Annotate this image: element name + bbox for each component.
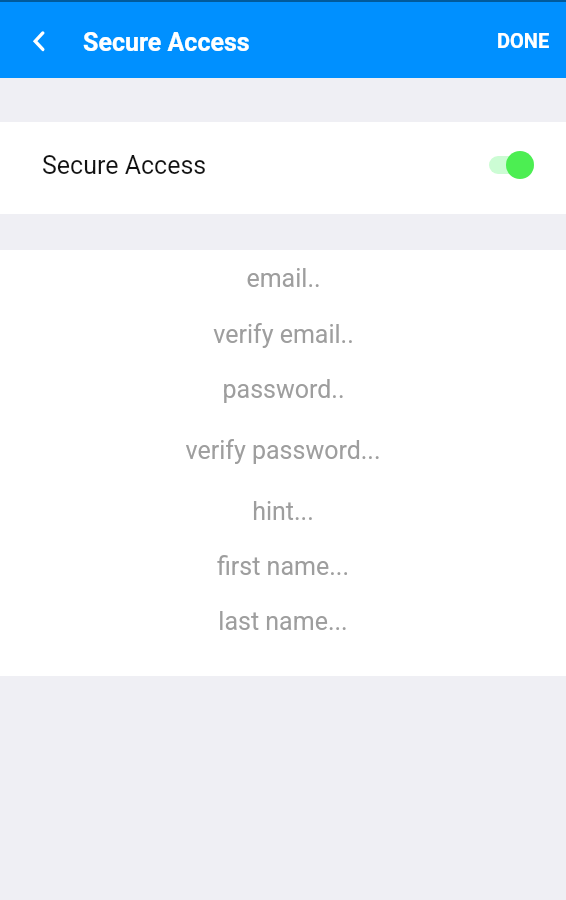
button[interactable]: DONE [479, 15, 566, 66]
staticText: email.. [246, 264, 321, 293]
button[interactable]: last name... [0, 579, 566, 635]
staticText: password.. [222, 375, 345, 404]
button[interactable]: first name... [0, 524, 566, 579]
button[interactable]: password.. [0, 347, 566, 405]
staticText: DONE [497, 29, 550, 52]
button[interactable]: Back [19, 19, 59, 59]
button[interactable]: email.. [0, 250, 566, 292]
button[interactable]: hint... [0, 466, 566, 524]
staticText: hint... [252, 497, 314, 526]
button[interactable]: verify password... [0, 405, 566, 466]
staticText: Secure Access [42, 151, 207, 180]
staticText: first name... [217, 552, 349, 581]
button[interactable]: Secure Access [0, 122, 566, 214]
staticText: verify email.. [213, 320, 354, 349]
staticText: last name... [218, 607, 348, 636]
button[interactable]: verify email.. [0, 292, 566, 347]
staticText: verify password... [185, 436, 381, 465]
button[interactable]: Secure Access on [489, 151, 534, 179]
staticText: Secure Access [83, 28, 250, 57]
